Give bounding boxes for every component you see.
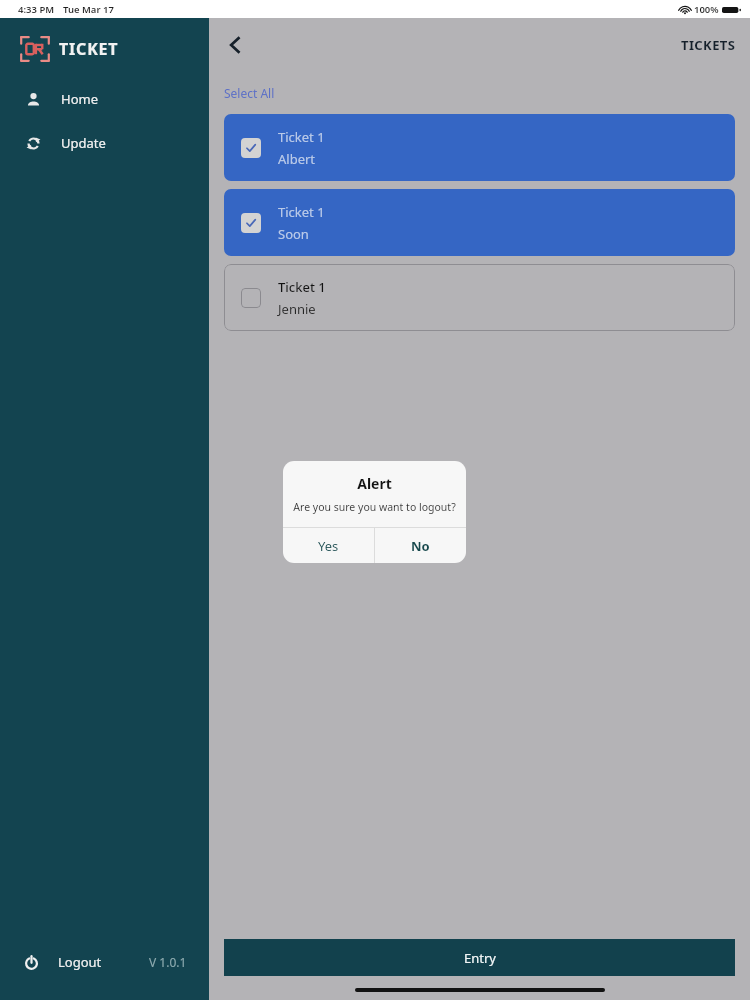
staticText: 4:33 PM — [18, 3, 55, 16]
staticText: TICKETS — [681, 36, 736, 54]
staticText: Update — [61, 134, 106, 152]
staticText: Are you sure you want to logout? — [290, 500, 459, 514]
staticText: 100% — [694, 3, 719, 16]
button[interactable]: Entry — [224, 939, 735, 976]
button[interactable]: Ticket 1 — [224, 264, 735, 331]
button[interactable]: Update — [0, 126, 209, 159]
staticText: Alert — [283, 474, 466, 493]
staticText: Entry — [464, 949, 496, 967]
staticText: Select All — [224, 85, 275, 101]
staticText: V 1.0.1 — [149, 954, 187, 970]
staticText: Ticket 1 — [278, 128, 325, 146]
staticText: Jennie — [278, 300, 316, 318]
button[interactable]: Home — [0, 82, 209, 115]
staticText: Home — [61, 90, 98, 108]
staticText: TICKET — [59, 38, 119, 60]
staticText: Ticket 1 — [278, 278, 326, 296]
staticText: Yes — [318, 537, 339, 555]
button[interactable]: No — [375, 528, 466, 563]
staticText: No — [411, 537, 430, 555]
button[interactable]: Yes — [283, 528, 374, 563]
button[interactable]: Ticket 1 — [224, 189, 735, 256]
staticText: Albert — [278, 150, 316, 168]
button[interactable]: Back — [214, 24, 256, 66]
button[interactable]: Ticket 1 — [224, 114, 735, 181]
staticText: Logout — [58, 953, 102, 971]
staticText: Soon — [278, 225, 309, 243]
staticText: Tue Mar 17 — [63, 3, 114, 16]
staticText: Ticket 1 — [278, 203, 325, 221]
button[interactable]: Logout — [0, 940, 209, 984]
button[interactable]: Select All — [224, 85, 275, 101]
